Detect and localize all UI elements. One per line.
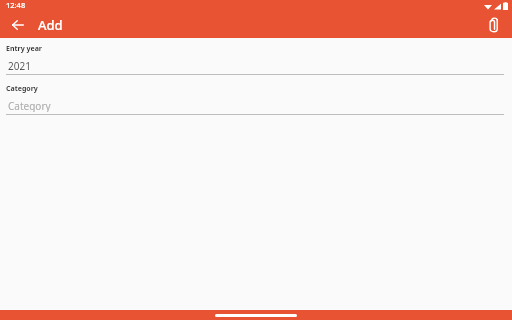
staticText: Entry year <box>6 44 42 54</box>
button[interactable]: Category <box>0 99 512 115</box>
button[interactable]: Back <box>6 13 30 37</box>
button[interactable]: Attach file <box>480 12 506 38</box>
button[interactable]: Home gesture handle <box>215 314 297 317</box>
button[interactable]: 2021 <box>0 59 512 75</box>
staticText: Category <box>6 84 38 94</box>
staticText: 12:48 <box>6 0 26 10</box>
staticText: Category <box>8 99 51 112</box>
staticText: 2021 <box>8 59 31 72</box>
staticText: Add <box>38 16 63 34</box>
